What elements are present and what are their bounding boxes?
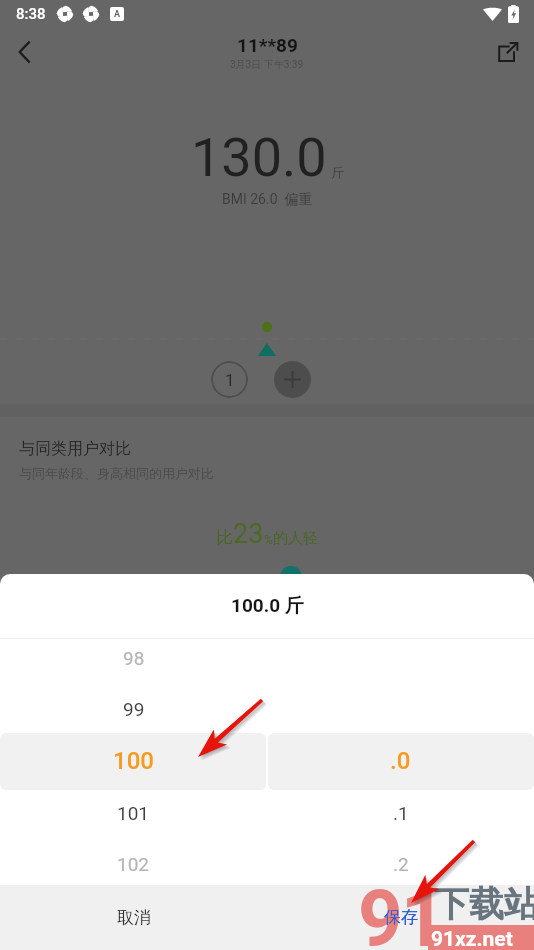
button[interactable]: .0 (267, 741, 534, 781)
staticText: .2 (393, 853, 409, 875)
staticText: 与同年龄段、身高相同的用户对比 (19, 465, 214, 481)
staticText: 91xz.net (431, 927, 513, 950)
staticText: BMI 26.0 偏重 (222, 191, 313, 209)
button[interactable]: 99 (0, 689, 267, 729)
staticText: 比 (216, 527, 233, 548)
staticText: A (114, 9, 121, 20)
staticText: 下载站 (434, 882, 534, 926)
button[interactable]: 101 (0, 793, 267, 833)
button[interactable]: 1 (211, 361, 248, 398)
staticText: % (264, 533, 273, 547)
staticText: 8:38 (16, 5, 46, 23)
button[interactable]: Share (488, 32, 528, 72)
button[interactable]: 100 (0, 741, 267, 781)
staticText: 与同类用户对比 (19, 439, 131, 459)
staticText: 23 (233, 518, 264, 550)
button[interactable]: .2 (267, 844, 534, 884)
button[interactable]: 保存 (267, 885, 534, 950)
staticText: 11**89 (237, 34, 298, 56)
staticText: 130.0 (191, 126, 327, 189)
staticText: 100.0 斤 (231, 594, 304, 618)
staticText: 102 (117, 853, 150, 875)
staticText: 斤 (331, 164, 344, 180)
staticText: 的人轻 (273, 529, 318, 548)
staticText: 98 (123, 647, 145, 669)
staticText: 保存 (384, 907, 418, 928)
button[interactable]: 取消 (0, 885, 267, 950)
button[interactable]: 102 (0, 844, 267, 884)
staticText: 保存 (384, 907, 418, 928)
button[interactable]: Add record (274, 361, 311, 398)
staticText: 取消 (117, 907, 151, 928)
staticText: 1 (225, 370, 235, 390)
staticText: 101 (117, 802, 150, 824)
staticText: 99 (123, 698, 145, 720)
staticText: .1 (393, 802, 409, 824)
button[interactable]: .1 (267, 793, 534, 833)
staticText: .0 (390, 747, 411, 775)
staticText: 91 (358, 874, 444, 950)
button[interactable]: Back (5, 32, 45, 72)
staticText: 3月3日 下午3:39 (230, 58, 304, 71)
button[interactable]: 98 (0, 638, 267, 678)
staticText: 100 (113, 747, 154, 775)
